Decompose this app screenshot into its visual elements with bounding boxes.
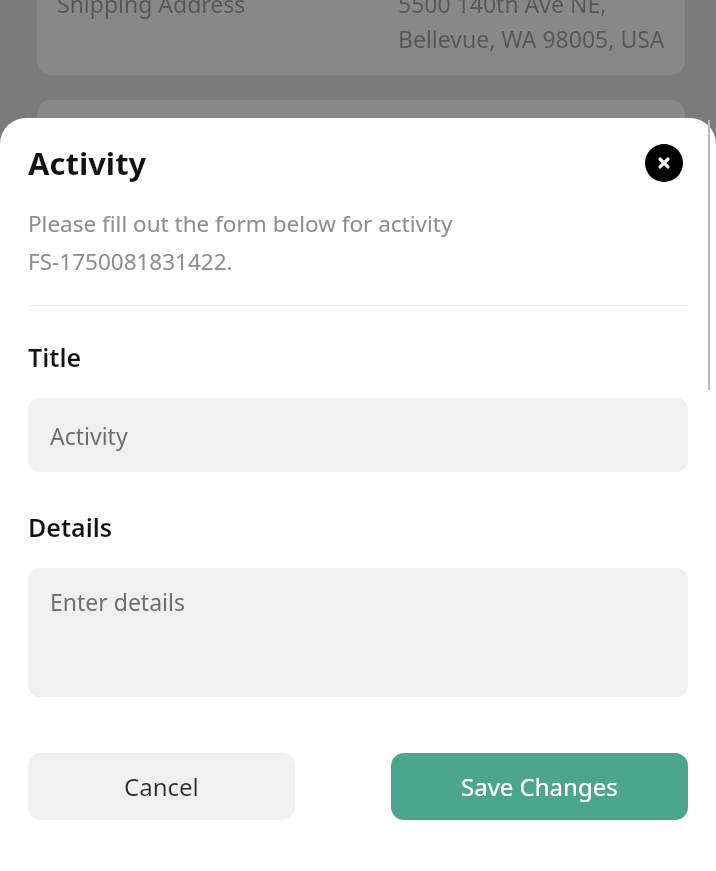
staticText: Title [28,340,82,374]
staticText: 5500 140th Ave NE, [398,0,607,19]
staticText: Enter details [50,586,185,617]
staticText: Bellevue, WA 98005, USA [398,23,665,54]
button[interactable]: Save Changes [391,753,688,820]
button[interactable]: Enter details [28,568,688,697]
staticText: Save Changes [461,770,618,803]
staticText: Cancel [124,770,199,803]
staticText: Shipping Address [57,0,246,19]
button[interactable]: Cancel [28,753,295,820]
button[interactable]: Close [645,144,683,182]
staticText: Activity [50,420,128,451]
button[interactable]: Activity [28,398,688,472]
staticText: Activity [28,142,147,184]
staticText: Order Information [57,126,266,159]
staticText: In Process [558,126,665,156]
staticText: Details [28,510,113,544]
staticText: Please fill out the form below for activ… [28,208,453,239]
staticText: FS-1750081831422. [28,246,233,277]
